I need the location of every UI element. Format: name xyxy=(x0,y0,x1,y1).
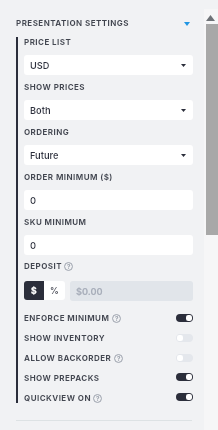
button[interactable]: ALLOW BACKORDER xyxy=(176,354,193,362)
staticText: ALLOW BACKORDER xyxy=(24,353,112,363)
button[interactable] xyxy=(16,369,193,389)
staticText: ORDERING xyxy=(24,127,70,137)
button[interactable]: USD xyxy=(24,55,193,75)
staticText: % xyxy=(50,286,59,296)
staticText: 0 xyxy=(30,195,37,206)
button[interactable]: Future xyxy=(24,145,193,165)
staticText: SKU MINIMUM xyxy=(24,217,87,227)
staticText: USD xyxy=(30,60,50,71)
button[interactable]: 0 xyxy=(24,235,193,255)
staticText: ? xyxy=(96,395,100,403)
button[interactable]: % xyxy=(44,281,65,300)
button[interactable] xyxy=(0,14,200,33)
staticText: QUICKVIEW ON xyxy=(24,393,91,403)
button[interactable] xyxy=(16,329,193,349)
staticText: Both xyxy=(30,105,51,116)
staticText: ? xyxy=(115,315,119,323)
button[interactable] xyxy=(16,389,193,409)
other: Scroll up xyxy=(206,15,215,21)
staticText: DEPOSIT xyxy=(24,261,62,271)
staticText: ORDER MINIMUM ($) xyxy=(24,172,113,182)
button[interactable]: SHOW PREPACKS xyxy=(176,373,193,381)
button[interactable]: $ xyxy=(24,281,44,300)
staticText: $ xyxy=(31,286,37,296)
staticText: PRICE LIST xyxy=(24,37,72,47)
button[interactable]: SHOW INVENTORY xyxy=(176,334,193,342)
staticText: SHOW INVENTORY xyxy=(24,333,106,343)
staticText: ENFORCE MINIMUM xyxy=(24,313,110,323)
staticText: PRESENTATION SETTINGS xyxy=(16,18,129,28)
staticText: SHOW PRICES xyxy=(24,82,86,92)
staticText: 0 xyxy=(30,240,37,251)
staticText: ? xyxy=(67,263,71,271)
button[interactable]: ENFORCE MINIMUM xyxy=(176,314,193,322)
staticText: ? xyxy=(117,355,121,363)
button[interactable]: QUICKVIEW ON xyxy=(176,393,193,401)
other: Collapse section xyxy=(184,22,190,26)
staticText: $0.00 xyxy=(76,286,103,297)
staticText: Future xyxy=(30,150,59,161)
button[interactable] xyxy=(16,309,193,329)
button[interactable]: Both xyxy=(24,100,193,120)
button[interactable] xyxy=(16,349,193,369)
staticText: SHOW PREPACKS xyxy=(24,373,100,383)
button[interactable]: $0.00 xyxy=(70,281,193,301)
button[interactable]: 0 xyxy=(24,190,193,210)
